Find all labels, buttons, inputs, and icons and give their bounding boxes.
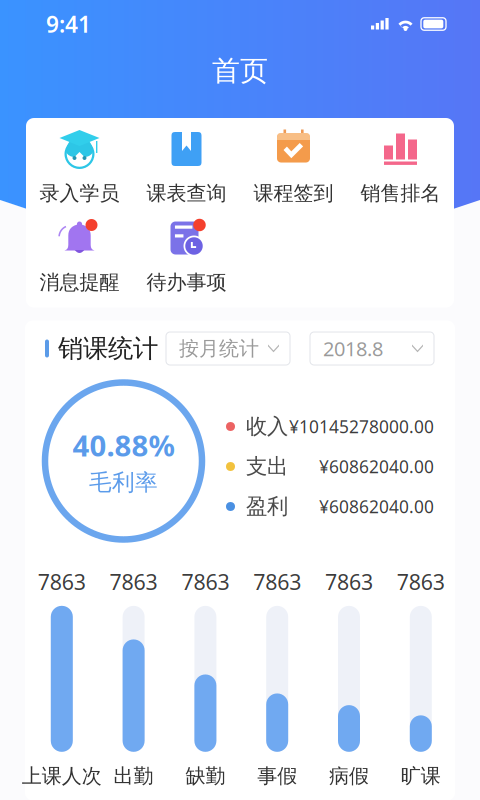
staticText: 40.88% xyxy=(72,426,174,465)
staticText: 录入学员 xyxy=(39,181,119,206)
staticText: 课程签到 xyxy=(253,181,333,206)
button[interactable]: 2018.8 xyxy=(310,332,434,365)
staticText: 事假 xyxy=(257,764,297,788)
staticText: 旷课 xyxy=(401,764,441,788)
staticText: 收入 xyxy=(246,413,288,440)
staticText: 病假 xyxy=(329,764,369,788)
staticText: 课表查询 xyxy=(146,181,226,206)
staticText: 7863 xyxy=(253,567,301,596)
staticText: 按月统计 xyxy=(179,336,259,361)
staticText: 7863 xyxy=(397,567,445,596)
button[interactable]: 按月统计 xyxy=(166,332,290,365)
staticText: ¥60862040.00 xyxy=(319,455,434,478)
button[interactable]: 销售排名 xyxy=(347,127,454,216)
staticText: 7863 xyxy=(110,567,158,596)
staticText: 支出 xyxy=(246,453,288,480)
staticText: 首页 xyxy=(212,54,268,88)
staticText: 上课人次 xyxy=(22,764,102,788)
staticText: 销售排名 xyxy=(360,181,440,206)
staticText: 缺勤 xyxy=(185,764,225,788)
staticText: 7863 xyxy=(38,567,86,596)
staticText: 7863 xyxy=(325,567,373,596)
staticText: ¥10145278000.00 xyxy=(289,415,434,438)
staticText: 毛利率 xyxy=(89,469,158,496)
staticText: 出勤 xyxy=(114,764,154,788)
button[interactable]: 课表查询 xyxy=(133,127,240,216)
staticText: 盈利 xyxy=(246,493,288,520)
staticText: ¥60862040.00 xyxy=(319,495,434,518)
staticText: 消息提醒 xyxy=(39,270,119,295)
staticText: 9:41 xyxy=(46,9,91,39)
button[interactable]: 消息提醒 xyxy=(26,216,133,305)
button[interactable]: 课程签到 xyxy=(240,127,347,216)
staticText: 2018.8 xyxy=(323,335,383,362)
staticText: 7863 xyxy=(181,567,229,596)
button[interactable]: 待办事项 xyxy=(133,216,240,305)
staticText: 销课统计 xyxy=(58,333,158,364)
staticText: 待办事项 xyxy=(146,270,226,295)
button[interactable]: 录入学员 xyxy=(26,127,133,216)
